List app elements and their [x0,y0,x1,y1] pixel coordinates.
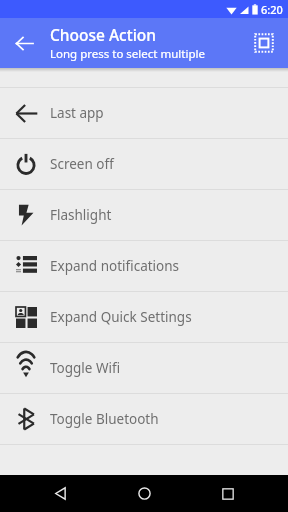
button[interactable]: Last app [0,88,288,138]
staticText: Long press to select multiple [50,46,205,62]
button[interactable]: Screen off [0,139,288,189]
button[interactable]: Flashlight [0,190,288,240]
button[interactable]: Home [121,475,167,512]
staticText: Expand notifications [50,257,180,275]
button[interactable]: Expand notifications [0,241,288,291]
button[interactable]: Select all [244,23,284,63]
staticText: Toggle Bluetooth [50,410,159,428]
staticText: Flashlight [50,206,112,224]
staticText: Screen off [50,155,114,173]
button[interactable]: Back [4,23,44,63]
staticText: Toggle Wifi [50,359,121,377]
button[interactable]: Back [38,475,84,512]
button[interactable]: Expand Quick Settings [0,292,288,342]
staticText: Last app [50,104,104,122]
staticText: 6:20 [261,2,283,17]
staticText: Expand Quick Settings [50,308,192,326]
button[interactable]: Toggle Wifi [0,343,288,393]
button[interactable]: Toggle Bluetooth [0,394,288,444]
button[interactable]: Recent apps [205,475,251,512]
staticText: Choose Action [50,24,157,45]
